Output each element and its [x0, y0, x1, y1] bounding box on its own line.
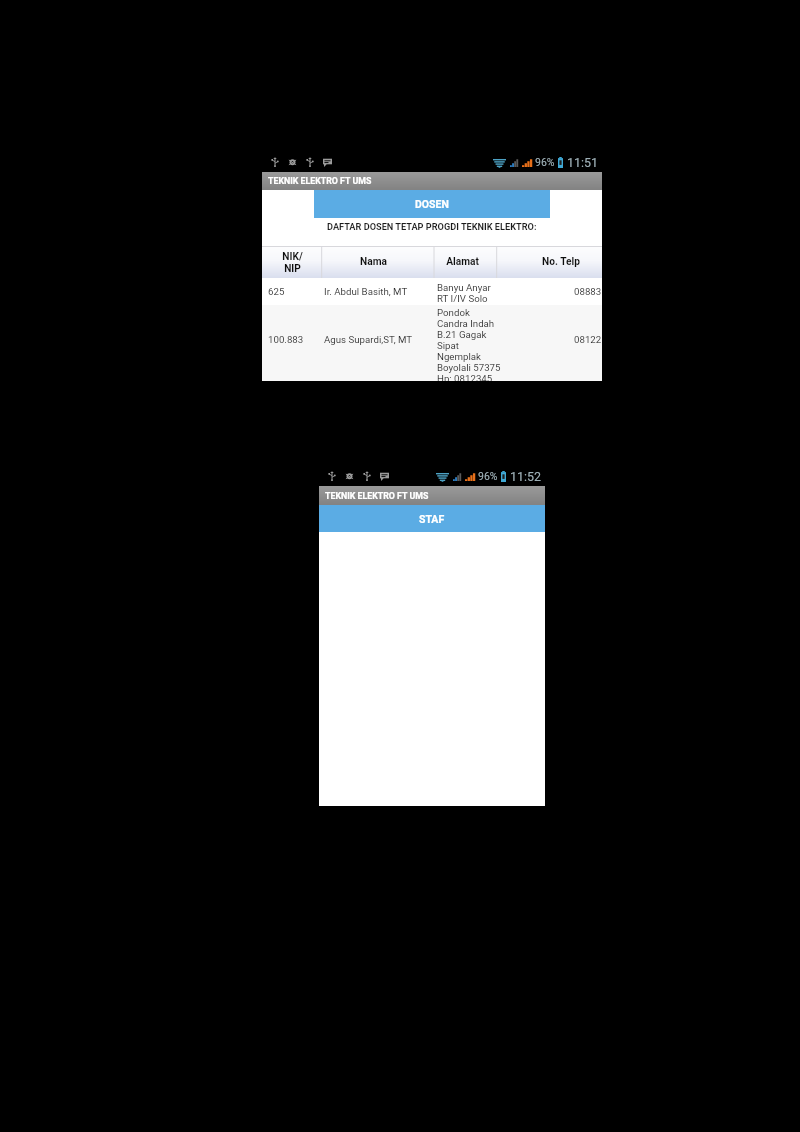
staticText: Agus Supardi,ST, MT	[324, 334, 413, 345]
staticText: Pondok	[437, 307, 470, 318]
staticText: 08883	[574, 286, 602, 297]
staticText: RT I/IV Solo	[437, 293, 488, 304]
staticText: Boyolali 57375	[437, 362, 501, 373]
other: USB debugging	[288, 157, 297, 167]
staticText: Nama	[360, 256, 387, 268]
staticText: Banyu Anyar	[437, 282, 491, 293]
staticText: Sipat	[437, 340, 459, 351]
other: USB connected	[271, 157, 279, 167]
other: Wi-Fi signal	[493, 157, 506, 168]
other: USB connected	[328, 471, 336, 481]
button[interactable]: DOSEN	[314, 190, 550, 218]
other: Mobile signal SIM 2	[522, 158, 532, 167]
staticText: Ngemplak	[437, 351, 481, 362]
staticText: TEKNIK ELEKTRO FT UMS	[325, 491, 429, 501]
staticText: No. Telp	[542, 256, 580, 268]
staticText: Ir. Abdul Basith, MT	[324, 286, 408, 297]
staticText: B.21 Gagak	[437, 329, 487, 340]
other: Mobile signal SIM 1	[453, 472, 461, 481]
other: New message	[380, 472, 389, 481]
button[interactable]: 100.883	[262, 305, 602, 381]
other: Battery 96 percent	[501, 471, 506, 482]
other: Mobile signal SIM 2	[465, 472, 475, 481]
other: USB transfer	[363, 471, 371, 481]
other: USB transfer	[306, 157, 314, 167]
button[interactable]: TEKNIK ELEKTRO FT UMS	[262, 172, 602, 190]
other: Battery 96 percent	[558, 157, 563, 168]
button[interactable]: TEKNIK ELEKTRO FT UMS	[319, 486, 545, 505]
button[interactable]: 625	[262, 278, 602, 305]
staticText: Hp: 0812345	[437, 373, 493, 381]
staticText: 11:52	[510, 469, 542, 484]
staticText: 11:51	[567, 155, 599, 170]
staticText: 96%	[535, 156, 555, 168]
staticText: DAFTAR DOSEN TETAP PROGDI TEKNIK ELEKTRO…	[327, 221, 537, 232]
staticText: 625	[268, 286, 285, 297]
staticText: DOSEN	[415, 198, 449, 210]
other: Wi-Fi signal	[436, 471, 449, 482]
other: Mobile signal SIM 1	[510, 158, 518, 167]
button[interactable]: STAF	[319, 505, 545, 532]
staticText: 08122	[574, 334, 602, 345]
other: New message	[323, 158, 332, 167]
staticText: TEKNIK ELEKTRO FT UMS	[268, 176, 372, 186]
staticText: STAF	[419, 513, 445, 525]
other: USB debugging	[345, 471, 354, 481]
staticText: Alamat	[446, 256, 479, 268]
staticText: 100.883	[268, 334, 304, 345]
staticText: 96%	[478, 470, 498, 482]
staticText: Candra Indah	[437, 318, 495, 329]
staticText: NIK/ NIP	[282, 251, 303, 274]
